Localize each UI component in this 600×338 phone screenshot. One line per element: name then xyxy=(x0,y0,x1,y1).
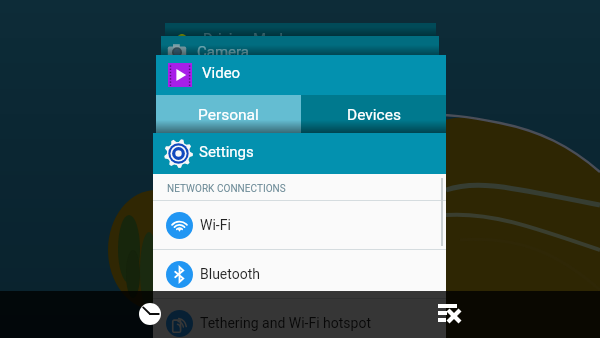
staticText: Tethering and Wi-Fi hotspot xyxy=(200,315,371,331)
button[interactable]: Bluetooth xyxy=(153,250,446,298)
staticText: Devices xyxy=(347,106,401,124)
button[interactable]: Clear all recent apps xyxy=(433,300,465,326)
button[interactable]: Tethering and Wi-Fi hotspot xyxy=(153,299,446,338)
staticText: Personal xyxy=(198,106,259,124)
staticText: Bluetooth xyxy=(200,266,260,282)
button[interactable]: Personal xyxy=(156,95,301,133)
staticText: Driving Mode xyxy=(203,30,291,44)
button[interactable]: Devices xyxy=(301,95,446,133)
staticText: Video xyxy=(202,64,241,82)
staticText: NETWORK CONNECTIONS xyxy=(167,183,286,195)
staticText: Camera xyxy=(197,43,249,61)
staticText: Settings xyxy=(199,143,254,161)
button[interactable]: Settings xyxy=(153,133,446,174)
button[interactable]: Wi-Fi xyxy=(153,201,446,249)
button[interactable]: Recent history xyxy=(139,303,161,325)
button[interactable]: Video xyxy=(156,55,446,95)
staticText: Wi-Fi xyxy=(200,217,231,233)
